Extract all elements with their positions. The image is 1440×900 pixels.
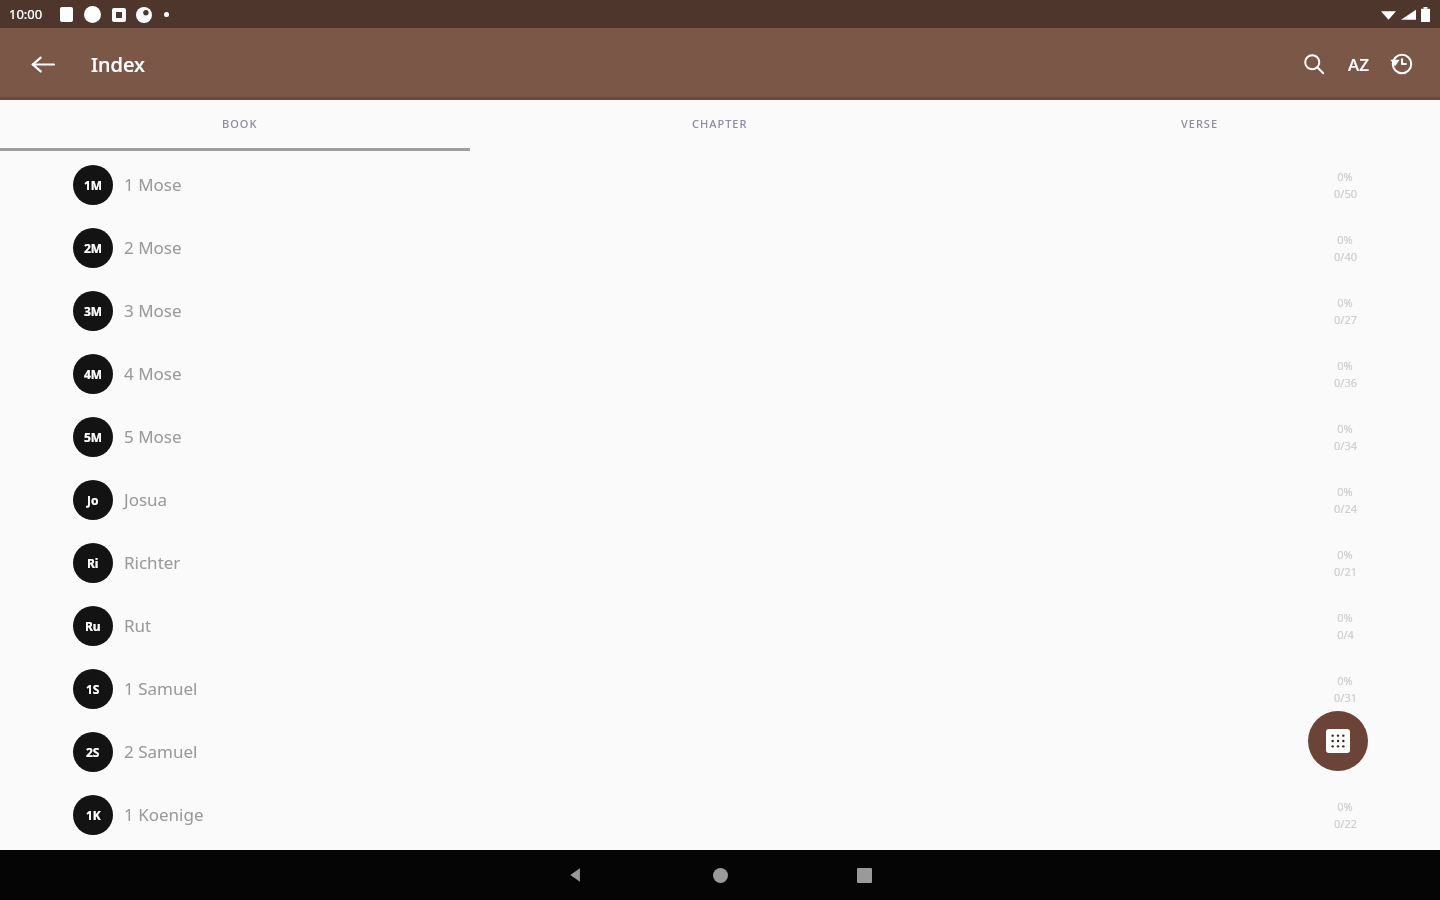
- button[interactable]: 4M: [0, 342, 1440, 405]
- button[interactable]: Home: [696, 851, 744, 899]
- button[interactable]: Jo: [0, 468, 1440, 531]
- button[interactable]: 1M: [0, 153, 1440, 216]
- staticText: 0%: [1337, 169, 1353, 184]
- staticText: Jo: [87, 492, 99, 508]
- button[interactable]: 5M: [0, 405, 1440, 468]
- staticText: Ri: [87, 555, 99, 571]
- staticText: 0%: [1337, 547, 1353, 562]
- staticText: 0%: [1337, 673, 1353, 688]
- button[interactable]: 2S: [0, 720, 1440, 783]
- staticText: 2 Mose: [124, 236, 182, 259]
- staticText: 1K: [86, 807, 101, 823]
- staticText: 0/24: [1334, 753, 1357, 768]
- staticText: 0/31: [1334, 690, 1357, 705]
- staticText: 0/36: [1334, 375, 1357, 390]
- staticText: 0/24: [1334, 501, 1357, 516]
- button[interactable]: Grid view: [1308, 711, 1368, 771]
- staticText: Josua: [124, 488, 168, 511]
- staticText: 0%: [1337, 421, 1353, 436]
- staticText: Richter: [124, 551, 181, 574]
- button[interactable]: Search: [1292, 42, 1336, 86]
- staticText: 5M: [84, 429, 103, 445]
- staticText: 3M: [84, 303, 103, 319]
- button[interactable]: Ru: [0, 594, 1440, 657]
- staticText: 0%: [1337, 736, 1353, 751]
- staticText: AZ: [1348, 53, 1369, 76]
- button[interactable]: 1S: [0, 657, 1440, 720]
- staticText: 0/22: [1334, 816, 1357, 831]
- staticText: 1 Samuel: [124, 677, 198, 700]
- staticText: 4 Mose: [124, 362, 182, 385]
- staticText: 1 Mose: [124, 173, 182, 196]
- staticText: 5 Mose: [124, 425, 182, 448]
- staticText: 0/4: [1337, 627, 1354, 642]
- staticText: 1S: [86, 681, 100, 697]
- button[interactable]: VERSE: [960, 100, 1440, 153]
- staticText: 0%: [1337, 610, 1353, 625]
- button[interactable]: Ri: [0, 531, 1440, 594]
- staticText: 0%: [1337, 358, 1353, 373]
- staticText: 0%: [1337, 295, 1353, 310]
- staticText: 2S: [86, 744, 100, 760]
- staticText: 0/50: [1334, 186, 1357, 201]
- button[interactable]: BOOK: [0, 100, 480, 153]
- button[interactable]: 3M: [0, 279, 1440, 342]
- staticText: 0%: [1337, 484, 1353, 499]
- staticText: 0/40: [1334, 249, 1357, 264]
- staticText: 0/21: [1334, 564, 1357, 579]
- staticText: 0%: [1337, 232, 1353, 247]
- button[interactable]: History: [1380, 42, 1424, 86]
- staticText: 10:00: [9, 5, 43, 23]
- staticText: 1M: [84, 177, 103, 193]
- button[interactable]: Sort alphabetically: [1336, 42, 1380, 86]
- button[interactable]: 1K: [0, 783, 1440, 846]
- button[interactable]: Back: [552, 851, 600, 899]
- staticText: 0/34: [1334, 438, 1357, 453]
- staticText: 3 Mose: [124, 299, 182, 322]
- button[interactable]: 2M: [0, 216, 1440, 279]
- staticText: Rut: [124, 614, 152, 637]
- staticText: 4M: [84, 366, 103, 382]
- staticText: 2M: [84, 240, 103, 256]
- staticText: BOOK: [222, 116, 258, 131]
- button[interactable]: CHAPTER: [480, 100, 960, 153]
- button[interactable]: Recent apps: [840, 851, 888, 899]
- staticText: VERSE: [1181, 116, 1219, 131]
- button[interactable]: Back: [22, 44, 62, 84]
- staticText: Index: [91, 51, 145, 78]
- staticText: 0%: [1337, 799, 1353, 814]
- staticText: 0/27: [1334, 312, 1357, 327]
- staticText: 1 Koenige: [124, 803, 204, 826]
- staticText: Ru: [85, 618, 101, 634]
- staticText: 2 Samuel: [124, 740, 198, 763]
- staticText: CHAPTER: [692, 116, 748, 131]
